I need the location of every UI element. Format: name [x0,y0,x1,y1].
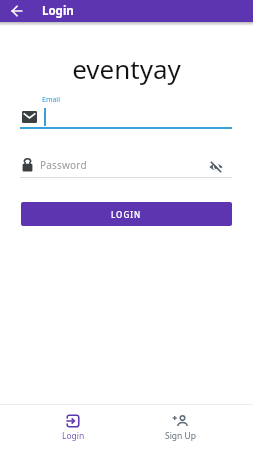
staticText: Login [62,430,85,442]
button[interactable]: Sign Up [140,414,220,450]
staticText: Email [42,95,60,105]
button[interactable]: Password [18,153,234,178]
button[interactable] [8,3,26,19]
button[interactable] [18,104,234,130]
staticText: Sign Up [165,430,196,442]
button[interactable]: LOGIN [21,202,232,226]
staticText: LOGIN [111,209,142,220]
staticText: Password [40,158,87,172]
staticText: Login [42,3,74,19]
staticText: eventyay [0,51,253,86]
button[interactable]: Login [33,414,113,450]
